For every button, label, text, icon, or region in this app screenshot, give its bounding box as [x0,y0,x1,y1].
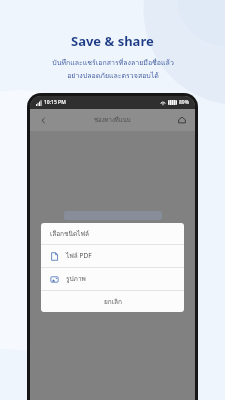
staticText: Save & share [71,32,154,50]
button[interactable]: ยกเลิก [41,291,184,312]
staticText: เลือกชนิดไฟล์ [50,229,89,239]
button[interactable]: รูปภาพ [41,268,184,290]
staticText: 89% [179,99,189,106]
staticText: อย่างปลอดภัยและตรวจสอบได้ [67,70,159,81]
staticText: ช่องทางที่แนบ [94,115,131,125]
staticText: 10:15 PM [44,99,66,106]
staticText: ยกเลิก [104,297,122,307]
staticText: รูปภาพ [66,274,86,284]
button[interactable]: Home [175,113,189,127]
staticText: ไฟล์ PDF [66,251,92,261]
button[interactable]: ไฟล์ PDF [41,245,184,267]
staticText: บันทึกและแชร์เอกสารที่ลงลายมือชื่อแล้ว [52,57,174,68]
button[interactable]: Back [36,113,50,127]
